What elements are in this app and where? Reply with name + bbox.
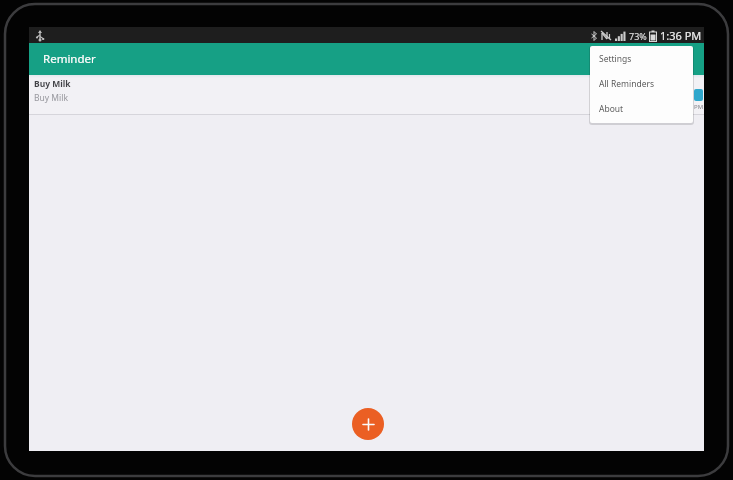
staticText: Reminder	[43, 51, 96, 67]
staticText: Buy Milk	[34, 92, 68, 104]
staticText: 73%	[629, 30, 647, 42]
button[interactable]	[352, 408, 384, 440]
button[interactable]: Buy Milk	[29, 75, 704, 114]
button[interactable]: All Reminders	[590, 71, 693, 96]
staticText: 1:36 PM	[660, 28, 702, 43]
staticText: About	[599, 103, 624, 115]
staticText: PM	[694, 103, 704, 111]
staticText: Settings	[599, 53, 632, 65]
button[interactable]: Settings	[590, 46, 693, 71]
staticText: Buy Milk	[34, 78, 71, 90]
button[interactable]: About	[590, 96, 693, 121]
staticText: All Reminders	[599, 78, 655, 90]
